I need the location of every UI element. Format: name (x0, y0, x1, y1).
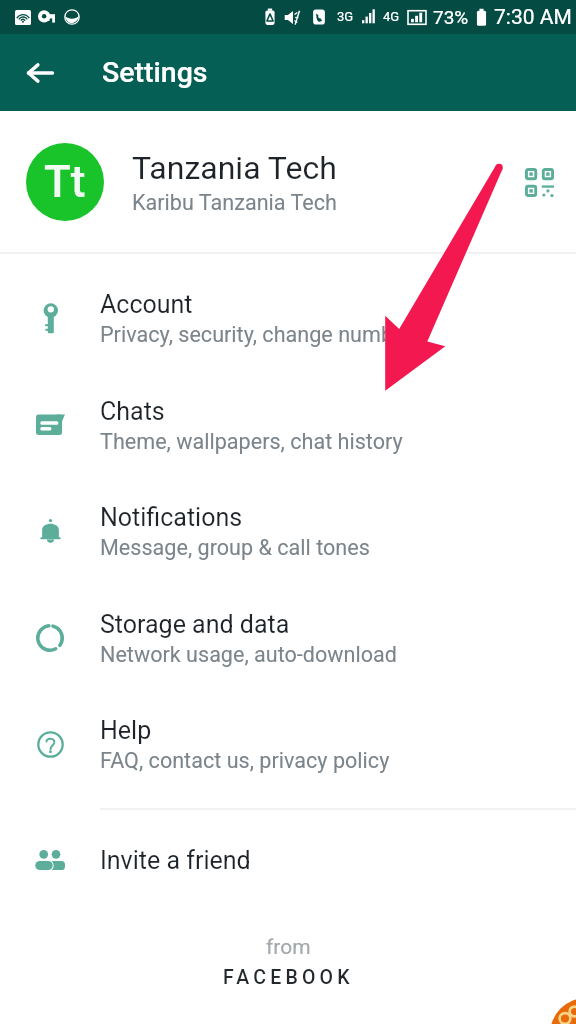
staticText: Message, group & call tones (100, 535, 370, 560)
staticText: Notifications (100, 503, 243, 532)
staticText: FACEBOOK (223, 966, 354, 989)
button[interactable]: QR code (509, 111, 569, 253)
button[interactable]: Help (0, 696, 576, 792)
staticText: 4G (383, 9, 400, 24)
staticText: FAQ, contact us, privacy policy (100, 748, 390, 773)
staticText: Theme, wallpapers, chat history (100, 429, 403, 454)
staticText: Account (100, 290, 193, 319)
staticText: 7:30 AM (494, 5, 572, 30)
button[interactable]: Storage and data (0, 590, 576, 686)
button[interactable]: Tt (0, 111, 576, 253)
staticText: Help (100, 716, 152, 745)
staticText: Network usage, auto-download (100, 642, 397, 667)
staticText: Karibu Tanzania Tech (132, 190, 337, 215)
staticText: Settings (102, 56, 208, 89)
button[interactable]: Back (0, 34, 80, 111)
staticText: Tt (44, 156, 86, 208)
staticText: Chats (100, 397, 165, 426)
button[interactable]: Screen recorder (550, 998, 576, 1024)
staticText: Invite a friend (100, 846, 251, 875)
staticText: Storage and data (100, 610, 290, 639)
staticText: 3G (337, 9, 354, 24)
staticText: Tanzania Tech (132, 149, 337, 187)
staticText: 73% (433, 6, 469, 28)
button[interactable]: Invite a friend (0, 826, 576, 894)
staticText: from (266, 935, 311, 960)
button[interactable]: Chats (0, 377, 576, 473)
button[interactable]: Account (0, 270, 576, 366)
staticText: Privacy, security, change number (100, 322, 412, 347)
button[interactable]: Notifications (0, 483, 576, 579)
